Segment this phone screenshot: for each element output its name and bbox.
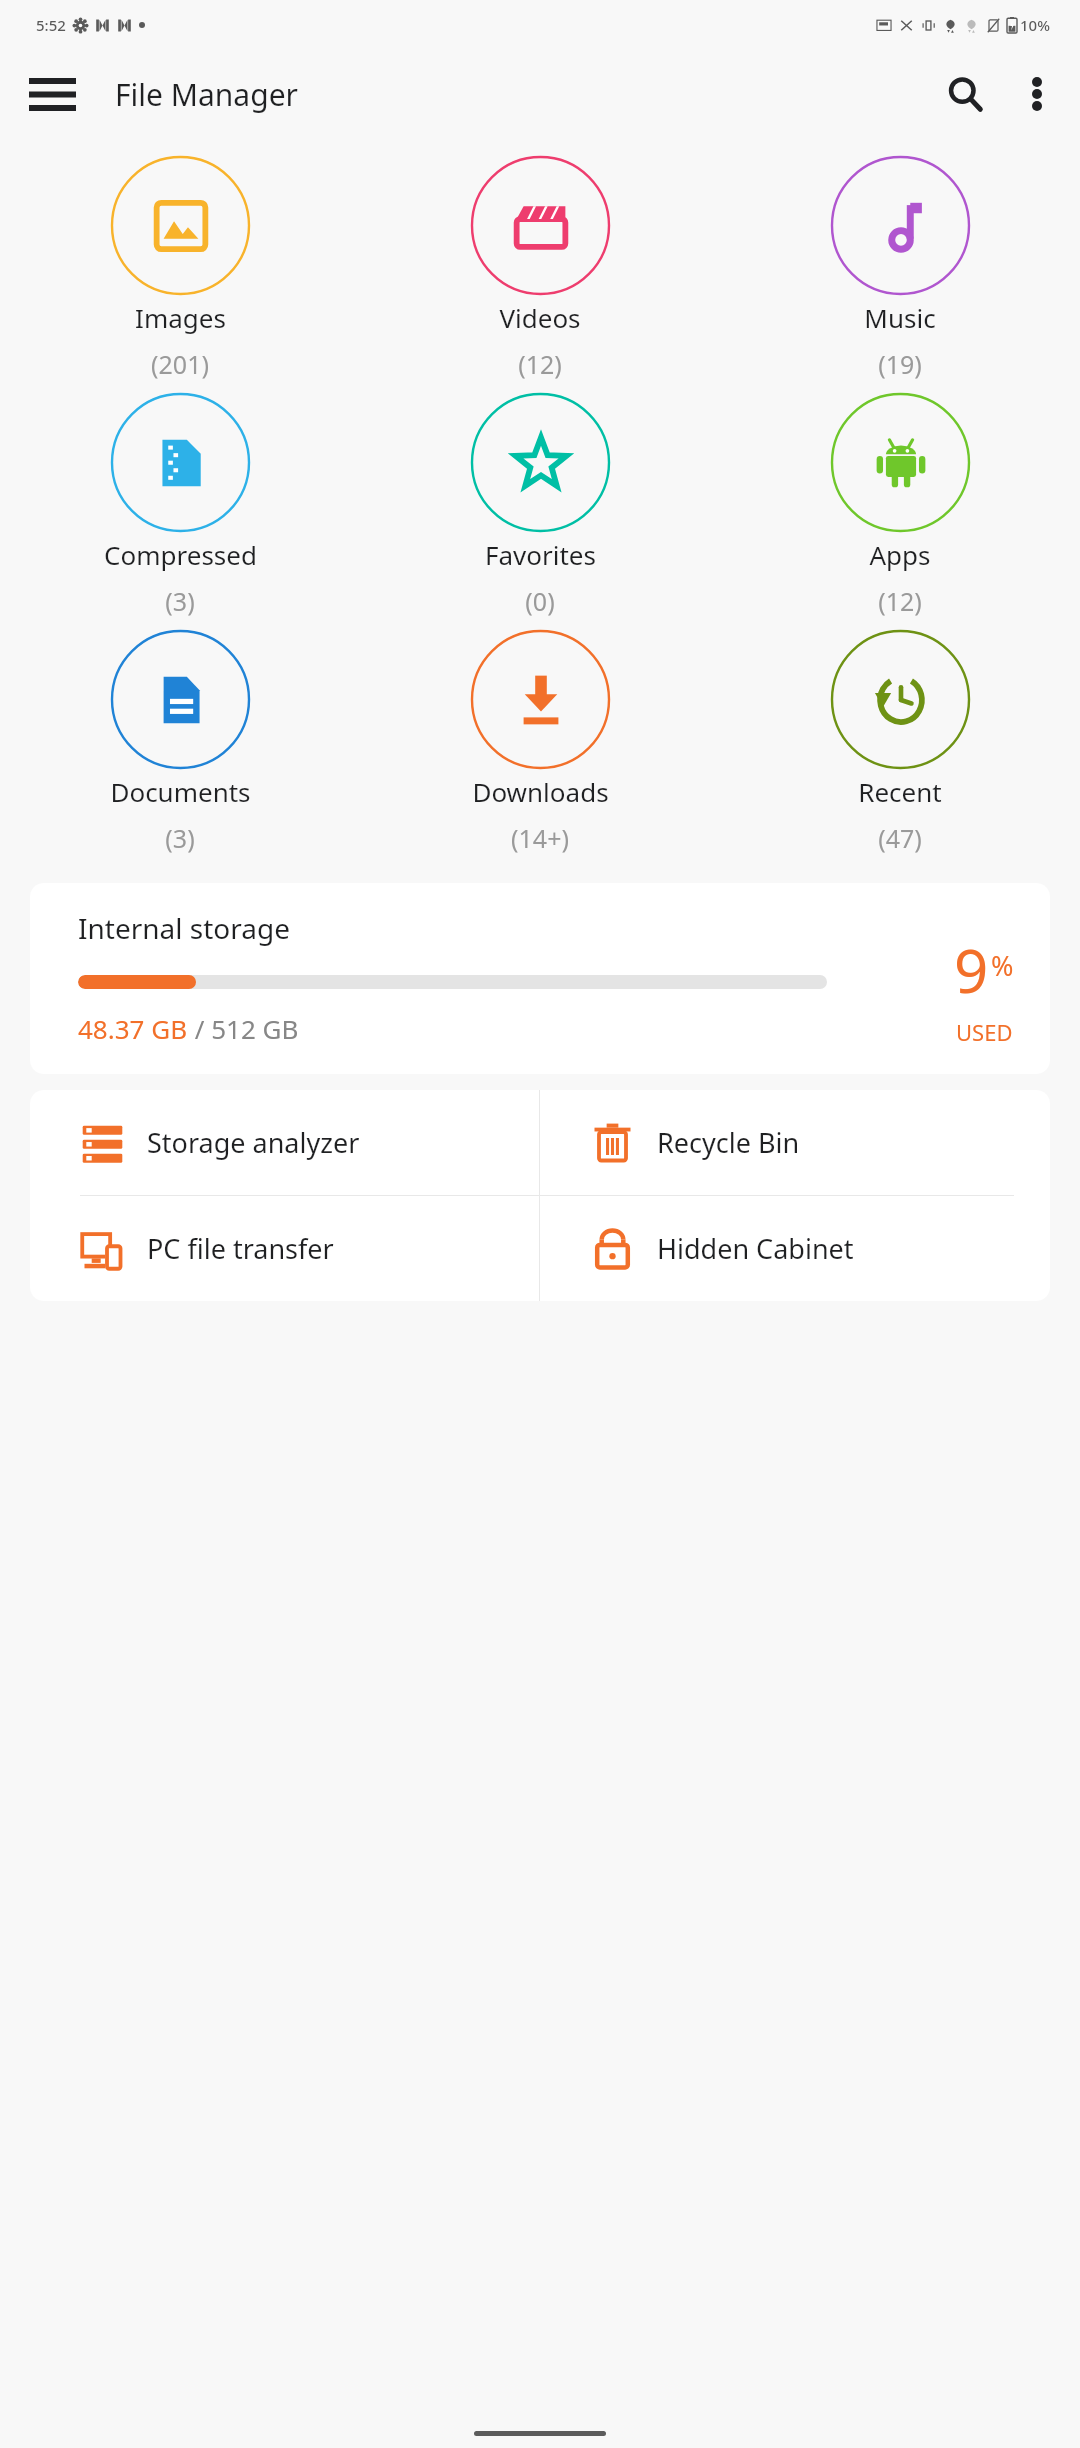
staticText: Favorites: [485, 537, 596, 572]
staticText: / 512 GB: [188, 1011, 299, 1046]
staticText: Compressed: [104, 537, 257, 572]
staticText: 5:52: [36, 15, 66, 35]
staticText: File Manager: [115, 74, 298, 115]
button[interactable]: More options: [1008, 65, 1066, 123]
staticText: USED: [956, 1017, 1013, 1047]
button[interactable]: Videos: [360, 154, 720, 383]
button[interactable]: Recycle Bin: [540, 1090, 1050, 1195]
staticText: Downloads: [472, 774, 609, 809]
button[interactable]: Hidden Cabinet: [540, 1196, 1050, 1301]
button[interactable]: Menu: [24, 66, 80, 122]
staticText: Images: [135, 300, 226, 335]
staticText: Internal storage: [78, 909, 290, 947]
button[interactable]: Documents: [0, 628, 360, 857]
button[interactable]: Downloads: [360, 628, 720, 857]
button[interactable]: Recent: [720, 628, 1080, 857]
staticText: PC file transfer: [147, 1230, 334, 1267]
button[interactable]: Favorites: [360, 391, 720, 620]
staticText: (47): [878, 821, 922, 855]
staticText: Documents: [110, 774, 251, 809]
button[interactable]: Apps: [720, 391, 1080, 620]
staticText: (201): [151, 347, 209, 381]
staticText: Storage analyzer: [147, 1124, 360, 1161]
staticText: 10%: [1020, 15, 1050, 35]
staticText: Apps: [869, 537, 931, 572]
staticText: (0): [525, 584, 555, 618]
button[interactable]: Images: [0, 154, 360, 383]
staticText: Music: [864, 300, 936, 335]
staticText: (3): [165, 821, 195, 855]
button[interactable]: Compressed: [0, 391, 360, 620]
button[interactable]: PC file transfer: [30, 1196, 539, 1301]
staticText: (12): [878, 584, 922, 618]
button[interactable]: Internal storage: [30, 883, 1050, 1074]
button[interactable]: Search: [936, 65, 994, 123]
button[interactable]: Music: [720, 154, 1080, 383]
staticText: %: [991, 947, 1014, 984]
staticText: (3): [165, 584, 195, 618]
staticText: (12): [518, 347, 562, 381]
staticText: Videos: [499, 300, 581, 335]
staticText: (14+): [511, 821, 569, 855]
staticText: Recycle Bin: [657, 1124, 800, 1161]
button[interactable]: Storage analyzer: [30, 1090, 539, 1195]
staticText: Recent: [858, 774, 942, 809]
staticText: Hidden Cabinet: [657, 1230, 854, 1267]
staticText: 48.37 GB: [78, 1011, 188, 1046]
staticText: 9: [954, 929, 989, 1011]
staticText: (19): [878, 347, 922, 381]
